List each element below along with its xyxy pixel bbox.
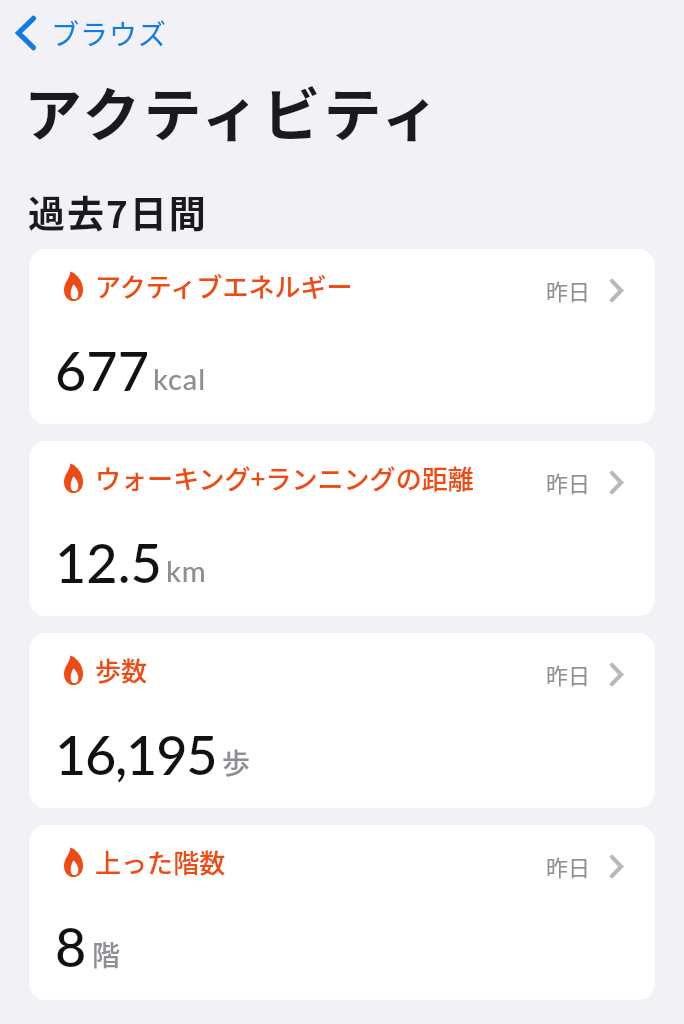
- staticText: 昨日: [546, 466, 591, 498]
- other: Show details: [610, 280, 623, 301]
- button[interactable]: 上った階数: [29, 825, 655, 1000]
- staticText: 歩: [222, 742, 251, 783]
- staticText: km: [166, 553, 207, 588]
- button[interactable]: 歩数: [29, 633, 655, 808]
- staticText: 昨日: [546, 658, 591, 690]
- staticText: 昨日: [546, 274, 591, 306]
- other: Back: [16, 16, 36, 50]
- staticText: 過去7日間: [28, 185, 208, 239]
- staticText: 上った階数: [95, 843, 226, 881]
- staticText: 16,195: [55, 722, 217, 787]
- staticText: 12.5: [55, 530, 162, 595]
- other: Show details: [610, 664, 623, 685]
- button[interactable]: ウォーキング+ランニングの距離: [29, 441, 655, 616]
- staticText: 階: [92, 934, 121, 975]
- staticText: ブラウズ: [51, 13, 168, 54]
- other: Show details: [610, 856, 623, 877]
- staticText: アクティビティ: [24, 69, 443, 153]
- staticText: アクティブエネルギー: [95, 267, 353, 305]
- staticText: kcal: [153, 361, 207, 396]
- staticText: 歩数: [95, 651, 148, 689]
- staticText: 昨日: [546, 850, 591, 882]
- other: Show details: [610, 472, 623, 493]
- button[interactable]: Back: [16, 0, 168, 66]
- staticText: 677: [55, 338, 149, 403]
- staticText: 8: [55, 914, 87, 979]
- button[interactable]: アクティブエネルギー: [29, 249, 655, 424]
- staticText: ウォーキング+ランニングの距離: [95, 459, 474, 497]
